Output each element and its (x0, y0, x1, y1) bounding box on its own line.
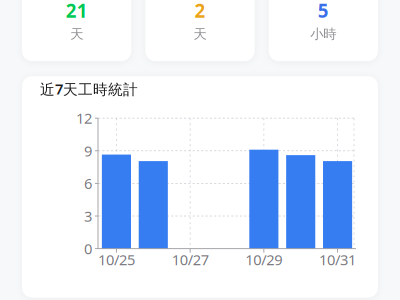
staticText: 天 (70, 26, 83, 42)
staticText: 小時 (310, 26, 336, 42)
staticText: 6 (84, 174, 92, 193)
staticText: 9 (84, 141, 92, 160)
staticText: 10/31 (319, 250, 356, 269)
staticText: 5 (318, 0, 329, 23)
staticText: 21 (66, 0, 88, 23)
staticText: 2 (194, 0, 205, 23)
staticText: 3 (84, 206, 92, 226)
staticText: 10/27 (172, 250, 209, 269)
staticText: 12 (76, 108, 92, 128)
staticText: 10/29 (245, 250, 282, 269)
staticText: 10/25 (98, 250, 135, 269)
staticText: 天 (193, 26, 206, 42)
button[interactable]: 2 (145, 0, 255, 61)
staticText: 0 (84, 239, 92, 258)
staticText: 近7天工時統計 (40, 79, 138, 99)
button[interactable]: 5 (269, 0, 378, 61)
button[interactable]: 21 (22, 0, 131, 61)
